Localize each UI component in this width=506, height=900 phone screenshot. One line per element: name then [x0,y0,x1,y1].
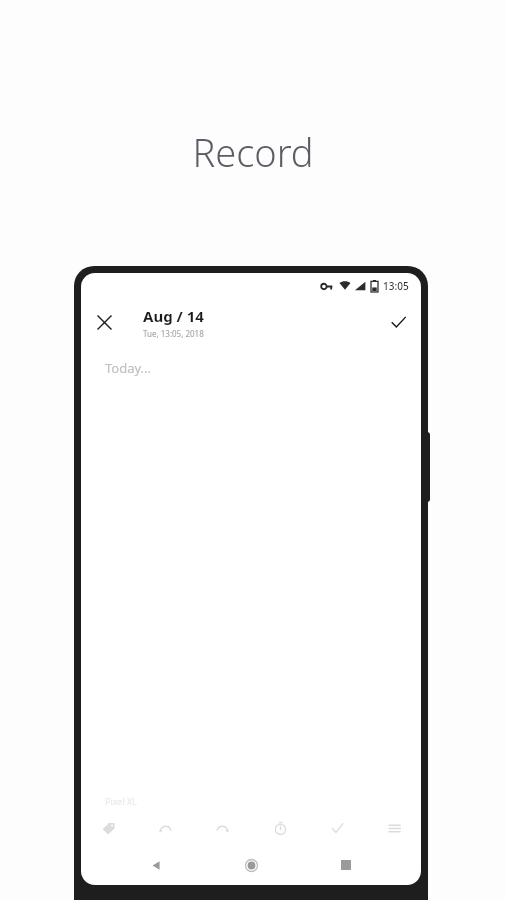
button[interactable]: Home [231,845,271,885]
button[interactable]: Save [375,299,421,345]
button[interactable]: Checklist [320,811,354,845]
button[interactable]: Recents [326,845,366,885]
button[interactable]: Redo [205,811,239,845]
button[interactable]: Back [136,845,176,885]
button[interactable]: Undo [148,811,182,845]
staticText: Tue, 13:05, 2018 [143,328,204,339]
staticText: 13:05 [383,279,409,293]
staticText: Pixel XL [105,795,138,807]
button[interactable]: Timer [263,811,297,845]
staticText: Aug / 14 [143,306,204,326]
button[interactable]: Close [81,299,127,345]
button[interactable]: Tag [91,811,125,845]
staticText: Today... [105,359,152,377]
staticText: Record [192,126,314,178]
button[interactable]: List [377,811,411,845]
